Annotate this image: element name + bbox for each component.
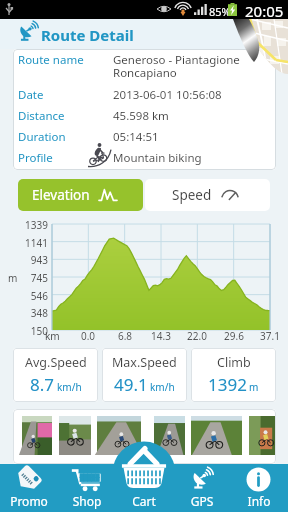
staticText: Promo	[0, 493, 58, 509]
staticText: 1392	[208, 373, 247, 396]
staticText: 14.3	[143, 329, 179, 343]
button[interactable]: Climb	[191, 348, 276, 402]
staticText: Date	[18, 87, 44, 103]
staticText: m	[8, 271, 18, 285]
staticText: Cart	[115, 493, 173, 509]
staticText: 6.8	[107, 329, 143, 343]
staticText: Elevation	[32, 186, 90, 204]
staticText: Climb	[217, 354, 251, 371]
staticText: 49.1	[114, 373, 148, 396]
button[interactable]	[115, 464, 173, 512]
staticText: 150	[14, 324, 48, 338]
button[interactable]	[58, 464, 116, 512]
staticText: Route Detail	[41, 25, 134, 45]
staticText: km/h	[57, 380, 82, 394]
other: Promo	[14, 468, 42, 490]
other: Shop	[72, 468, 101, 491]
other: Cart	[121, 444, 167, 490]
staticText: 943	[14, 253, 48, 267]
other: Info	[246, 467, 271, 492]
staticText: 20:05	[245, 1, 284, 20]
staticText: 05:14:51	[113, 129, 159, 145]
staticText: Distance	[18, 108, 65, 124]
button[interactable]: Avg.Speed	[13, 348, 98, 402]
staticText: 8.7	[30, 373, 55, 396]
button[interactable]	[191, 416, 242, 455]
button[interactable]	[0, 464, 58, 512]
button[interactable]	[22, 416, 52, 455]
staticText: 745	[14, 271, 48, 285]
staticText: 1141	[14, 236, 48, 250]
button[interactable]	[249, 416, 276, 455]
staticText: km	[45, 329, 60, 343]
staticText: Generoso - Piantagione	[113, 52, 240, 68]
staticText: m	[249, 380, 259, 394]
staticText: Route name	[18, 52, 84, 68]
button[interactable]	[230, 464, 288, 512]
staticText: 85%	[209, 4, 231, 19]
button[interactable]: Speed	[145, 179, 270, 211]
staticText: 37.1	[252, 329, 288, 343]
staticText: 45.598 km	[113, 108, 169, 124]
button[interactable]	[59, 416, 91, 455]
staticText: 546	[14, 289, 48, 303]
staticText: Info	[230, 493, 288, 509]
staticText: 348	[14, 306, 48, 320]
staticText: 22.0	[179, 329, 215, 343]
button[interactable]: Elevation	[18, 179, 143, 211]
staticText: Avg.Speed	[25, 354, 87, 371]
staticText: Shop	[58, 493, 116, 509]
button[interactable]	[154, 416, 185, 455]
other: GPS	[190, 467, 214, 491]
button[interactable]	[173, 464, 231, 512]
staticText: km/h	[150, 380, 175, 394]
staticText: 2013-06-01 10:56:08	[113, 87, 222, 103]
staticText: 29.6	[216, 329, 252, 343]
staticText: Max.Speed	[112, 354, 177, 371]
staticText: Profile	[18, 150, 53, 166]
button[interactable]: Max.Speed	[102, 348, 187, 402]
staticText: GPS	[173, 493, 231, 509]
staticText: Speed	[172, 186, 212, 204]
staticText: Roncapiano	[113, 65, 177, 81]
button[interactable]	[97, 416, 141, 455]
staticText: Duration	[18, 129, 66, 145]
staticText: 0.0	[70, 329, 106, 343]
staticText: 1339	[14, 218, 48, 232]
staticText: Mountain biking	[113, 150, 202, 166]
